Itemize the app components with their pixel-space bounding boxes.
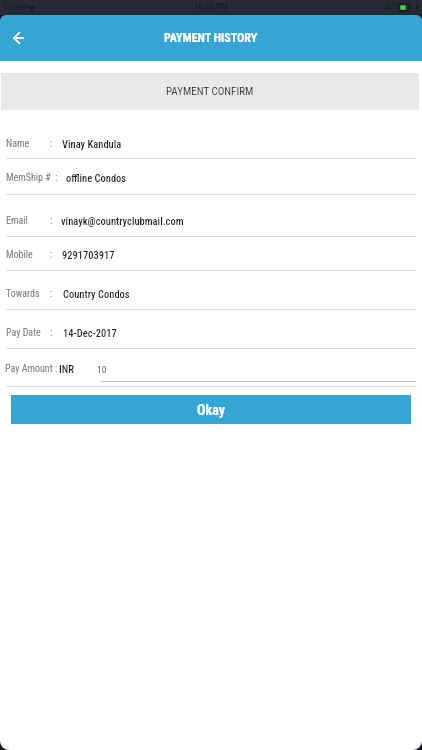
staticText: Mobile: [6, 249, 33, 261]
staticText: Name: [6, 138, 30, 150]
button[interactable]: Name: [0, 135, 422, 153]
staticText: offline Condos: [66, 172, 127, 184]
button[interactable]: MemShip #: [0, 169, 422, 187]
staticText: :: [55, 172, 58, 184]
staticText: Country Condos: [63, 288, 130, 300]
staticText: 14-Dec-2017: [63, 327, 117, 339]
staticText: PAYMENT CONFIRM: [166, 85, 254, 98]
button[interactable]: Back: [3, 23, 33, 53]
button[interactable]: Okay: [11, 395, 411, 424]
staticText: 10:44 PM: [194, 2, 228, 13]
staticText: MemShip #: [6, 172, 51, 184]
button[interactable]: Mobile: [0, 246, 422, 264]
staticText: INR: [59, 363, 74, 375]
staticText: Pay Amount :: [5, 363, 58, 375]
staticText: vinayk@countryclubmail.com: [61, 215, 184, 227]
button[interactable]: Pay Date: [0, 324, 422, 342]
button[interactable]: Towards: [0, 285, 422, 303]
staticText: Pay Date: [6, 327, 41, 339]
staticText: Okay: [197, 402, 225, 418]
staticText: Vinay Kandula: [62, 138, 122, 150]
staticText: Carrier: [3, 2, 27, 13]
button[interactable]: Email: [0, 212, 422, 230]
staticText: :: [50, 327, 53, 339]
staticText: PAYMENT HISTORY: [164, 31, 258, 45]
staticText: Towards: [6, 288, 40, 300]
staticText: :: [50, 138, 53, 150]
staticText: Email: [6, 215, 28, 227]
staticText: :: [50, 249, 53, 261]
staticText: :: [50, 288, 53, 300]
staticText: 47%: [385, 2, 400, 13]
staticText: 9291703917: [62, 249, 115, 261]
staticText: :: [50, 215, 53, 227]
staticText: 10: [97, 364, 107, 375]
